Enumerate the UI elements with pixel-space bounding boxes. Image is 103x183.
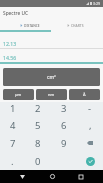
staticText: DISTANCE xyxy=(24,23,40,27)
staticText: nm xyxy=(48,92,55,97)
button[interactable]: Back xyxy=(15,170,29,183)
button[interactable]: 4 xyxy=(0,117,25,134)
button[interactable]: . xyxy=(0,152,25,170)
button[interactable]: 0 xyxy=(25,152,51,170)
button[interactable]: nm xyxy=(36,89,67,100)
staticText: 14.56 xyxy=(3,54,17,61)
button[interactable]: , xyxy=(77,117,103,134)
button[interactable]: 3 xyxy=(51,100,77,117)
staticText: 8 xyxy=(35,137,41,150)
button[interactable]: Home xyxy=(45,170,59,183)
staticText: 6 xyxy=(61,119,67,132)
staticText: cm² xyxy=(47,74,56,81)
staticText: 3 xyxy=(61,102,67,115)
staticText: - xyxy=(88,102,92,115)
button[interactable]: Recents xyxy=(74,170,88,183)
button[interactable]: CHARTS xyxy=(51,19,103,30)
staticText: Spectre UC xyxy=(3,10,29,17)
staticText: 3:29 xyxy=(93,1,101,6)
button[interactable]: - xyxy=(77,100,103,117)
button[interactable]: cm² xyxy=(3,68,100,86)
button[interactable]: Done xyxy=(77,152,103,170)
staticText: . xyxy=(11,155,14,168)
staticText: 12.13 xyxy=(3,40,17,47)
button[interactable]: Backspace xyxy=(87,141,93,145)
staticText: 0 xyxy=(35,155,41,168)
button[interactable]: Å xyxy=(69,89,100,100)
staticText: µm xyxy=(15,92,22,97)
button[interactable]: 9 xyxy=(51,134,77,152)
staticText: CHARTS xyxy=(71,23,84,27)
button[interactable]: 7 xyxy=(0,134,25,152)
button[interactable]: 1 xyxy=(0,100,25,117)
button[interactable]: Backspace xyxy=(77,134,103,152)
button[interactable]: 8 xyxy=(25,134,51,152)
staticText: 9 xyxy=(61,137,67,150)
button[interactable]: Done xyxy=(86,157,95,166)
staticText: Å xyxy=(83,92,86,97)
button[interactable]: 6 xyxy=(51,117,77,134)
staticText: 5 xyxy=(35,119,41,132)
staticText: 1 xyxy=(10,102,16,115)
button[interactable]: 5 xyxy=(25,117,51,134)
button[interactable]: 2 xyxy=(25,100,51,117)
staticText: , xyxy=(89,119,92,132)
staticText: 2 xyxy=(35,102,41,115)
button[interactable]: DISTANCE xyxy=(0,19,51,30)
staticText: 7 xyxy=(10,137,16,150)
button[interactable]: µm xyxy=(3,89,34,100)
staticText: 4 xyxy=(10,119,16,132)
